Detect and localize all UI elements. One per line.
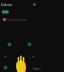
button[interactable]: New bbox=[2, 10, 9, 14]
button[interactable]: Profile bbox=[33, 3, 36, 6]
button[interactable]: Message item bbox=[0, 17, 64, 22]
staticText: Inbox bbox=[1, 2, 13, 7]
button[interactable]: Inbox bbox=[1, 1, 13, 7]
staticText: Tasks bbox=[33, 67, 41, 71]
staticText: New bbox=[2, 10, 9, 14]
staticText: Message item bbox=[7, 18, 27, 22]
button[interactable]: Tasks bbox=[33, 67, 41, 71]
